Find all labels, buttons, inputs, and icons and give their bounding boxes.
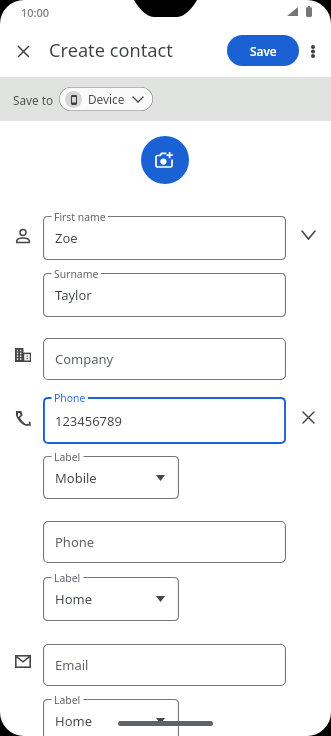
staticText: Phone <box>54 391 86 405</box>
staticText: Label <box>54 450 81 464</box>
staticText: 10:00 <box>21 5 50 20</box>
button[interactable]: Zoe <box>43 216 286 260</box>
staticText: Surname <box>54 267 99 281</box>
button[interactable]: Add photo <box>141 136 189 184</box>
staticText: First name <box>54 210 106 224</box>
staticText: Taylor <box>55 286 92 304</box>
staticText: Save to <box>13 92 54 108</box>
staticText: Label <box>54 571 81 585</box>
staticText: Create contact <box>49 38 173 63</box>
staticText: Home <box>55 590 92 608</box>
button[interactable]: Home <box>43 577 179 621</box>
button[interactable]: Taylor <box>43 273 286 317</box>
staticText: Label <box>54 693 81 707</box>
staticText: Home <box>55 712 92 730</box>
button[interactable]: More options <box>299 37 327 65</box>
button[interactable]: Expand name fields <box>295 221 322 248</box>
staticText: Email <box>55 656 89 674</box>
staticText: Company <box>55 350 114 368</box>
staticText: Phone <box>55 533 95 551</box>
button[interactable]: Phone <box>43 521 286 563</box>
staticText: Device <box>88 91 125 107</box>
button[interactable]: Company <box>43 338 286 380</box>
staticText: Save <box>250 43 277 59</box>
button[interactable]: Home <box>43 699 179 736</box>
button[interactable]: Email <box>43 644 286 686</box>
button[interactable]: Close <box>5 33 41 69</box>
button[interactable]: Save <box>227 35 299 66</box>
staticText: Zoe <box>55 229 78 247</box>
button[interactable]: Device <box>59 87 153 111</box>
button[interactable]: Mobile <box>43 456 179 499</box>
button[interactable]: Clear phone <box>295 404 322 431</box>
button[interactable]: 123456789 <box>43 397 286 444</box>
staticText: 123456789 <box>55 412 122 430</box>
staticText: Mobile <box>55 469 97 487</box>
